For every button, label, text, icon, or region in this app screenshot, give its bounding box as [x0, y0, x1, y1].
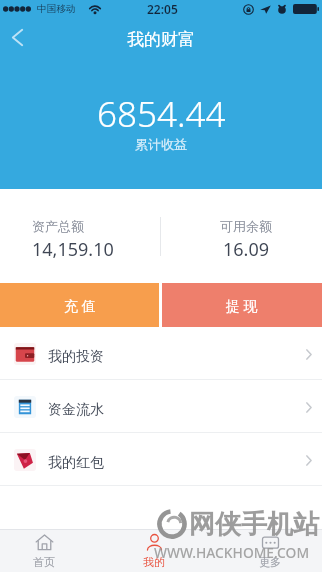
button[interactable]: 我的投资 — [0, 327, 322, 379]
button[interactable]: 资金流水 — [0, 380, 322, 432]
staticText: 我的红包 — [48, 454, 104, 472]
staticText: 6854.44 — [97, 90, 226, 138]
staticText: 16.09 — [223, 237, 270, 262]
button[interactable]: Back — [0, 22, 34, 52]
staticText: 资金流水 — [48, 401, 104, 419]
staticText: 我的财富 — [127, 29, 195, 50]
button[interactable]: 提 现 — [162, 283, 322, 327]
staticText: 充 值 — [64, 296, 96, 315]
staticText: 14,159.10 — [32, 237, 114, 262]
button[interactable]: 我的红包 — [0, 433, 322, 485]
staticText: 我的投资 — [48, 348, 104, 366]
button[interactable]: 充 值 — [0, 283, 159, 327]
staticText: 网侠手机站 — [189, 508, 319, 541]
button[interactable]: 更多 — [226, 529, 314, 572]
staticText: WWW.HACKHOME.COM — [154, 543, 310, 562]
staticText: 资产总额 — [32, 218, 84, 234]
staticText: 可用余额 — [220, 218, 272, 234]
staticText: 22:05 — [147, 1, 178, 17]
staticText: 更多 — [259, 555, 281, 569]
button[interactable]: 首页 — [0, 529, 88, 572]
staticText: 提 现 — [226, 296, 258, 315]
button[interactable]: 我的 — [110, 529, 198, 572]
staticText: 累计收益 — [135, 136, 187, 152]
staticText: 我的 — [143, 555, 165, 569]
staticText: 首页 — [33, 555, 55, 569]
staticText: 中国移动 — [37, 3, 76, 15]
